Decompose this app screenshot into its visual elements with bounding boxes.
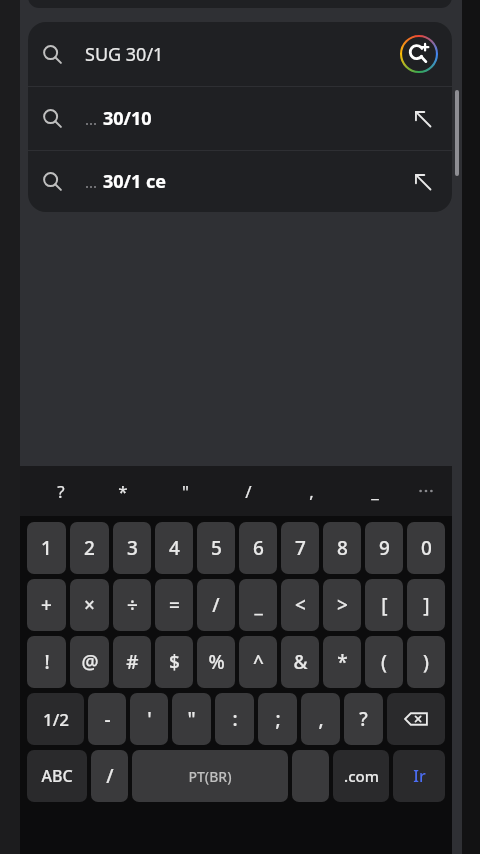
button[interactable]: , (280, 466, 343, 516)
staticText: 5 (211, 535, 222, 561)
button[interactable]: SUG 30/1 (28, 22, 452, 86)
staticText: 4 (169, 535, 180, 561)
button[interactable]: $ (155, 636, 193, 688)
staticText: ÷ (127, 592, 138, 618)
button[interactable]: & (281, 636, 319, 688)
staticText: , (309, 480, 314, 503)
button[interactable]: More options (412, 477, 440, 505)
button[interactable]: 8 (323, 522, 361, 574)
staticText: / (106, 763, 114, 789)
button[interactable]: + (27, 579, 66, 631)
button[interactable]: # (113, 636, 151, 688)
staticText: ... (85, 109, 98, 129)
staticText: _ (371, 480, 379, 503)
button[interactable]: * (92, 466, 154, 516)
button[interactable]: Backspace (387, 693, 445, 745)
button[interactable]: _ (239, 579, 277, 631)
button[interactable]: × (70, 579, 109, 631)
button[interactable]: / (91, 750, 128, 802)
button[interactable]: ] (407, 579, 445, 631)
button[interactable]: Ir (393, 750, 445, 802)
staticText: < (295, 592, 306, 618)
button[interactable]: % (197, 636, 235, 688)
staticText: ^ (253, 649, 264, 675)
button[interactable]: 5 (197, 522, 235, 574)
staticText: @ (81, 649, 99, 675)
button[interactable]: ( (365, 636, 403, 688)
button[interactable]: " (172, 693, 211, 745)
staticText: ? (57, 480, 65, 503)
button[interactable]: 2 (70, 522, 109, 574)
staticText: 8 (337, 535, 348, 561)
button[interactable]: 6 (239, 522, 277, 574)
button[interactable]: 4 (155, 522, 193, 574)
button[interactable]: [ (365, 579, 403, 631)
button[interactable]: Insert suggestion (408, 104, 438, 134)
button[interactable]: > (323, 579, 361, 631)
button[interactable]: .com (333, 750, 389, 802)
button[interactable]: 7 (281, 522, 319, 574)
staticText: ] (423, 592, 430, 618)
button[interactable]: ^ (239, 636, 277, 688)
staticText: / (245, 480, 252, 503)
button[interactable]: ABC (27, 750, 87, 802)
staticText: Ir (413, 765, 426, 787)
button[interactable]: : (215, 693, 254, 745)
button[interactable]: , (301, 693, 340, 745)
button[interactable]: ÷ (113, 579, 151, 631)
staticText: 1 (41, 535, 52, 561)
button[interactable]: < (281, 579, 319, 631)
button[interactable]: ... (28, 151, 452, 212)
staticText: 30/1 ce (103, 169, 167, 194)
staticText: * (337, 649, 348, 675)
staticText: + (41, 592, 52, 618)
button[interactable]: PT(BR) (132, 750, 288, 802)
staticText: ? (359, 706, 368, 732)
button[interactable]: @ (70, 636, 109, 688)
staticText: > (337, 592, 348, 618)
button[interactable]: / (217, 466, 280, 516)
staticText: , (318, 706, 324, 732)
button[interactable]: ; (258, 693, 297, 745)
button[interactable]: ! (27, 636, 66, 688)
staticText: ABC (41, 765, 73, 787)
staticText: " (182, 480, 189, 503)
staticText: $ (169, 649, 180, 675)
button[interactable]: = (155, 579, 193, 631)
staticText: 9 (379, 535, 390, 561)
button[interactable]: Google Lens search (400, 35, 438, 73)
button[interactable]: 9 (365, 522, 403, 574)
staticText: & (293, 649, 308, 675)
staticText: * (118, 480, 128, 503)
button[interactable]: ) (407, 636, 445, 688)
staticText: " (187, 706, 196, 732)
button[interactable]: - (88, 693, 126, 745)
button[interactable]: 1 (27, 522, 66, 574)
button[interactable]: " (154, 466, 217, 516)
button[interactable]: 0 (407, 522, 445, 574)
staticText: _ (254, 592, 263, 618)
button[interactable]: ... (28, 87, 452, 150)
button[interactable]: 3 (113, 522, 151, 574)
staticText: PT(BR) (188, 767, 232, 786)
staticText: ) (423, 649, 429, 675)
staticText: 0 (421, 535, 432, 561)
staticText: SUG 30/1 (85, 42, 164, 67)
button[interactable] (292, 750, 329, 802)
staticText: = (169, 592, 180, 618)
button[interactable]: ? (344, 693, 383, 745)
button[interactable]: / (197, 579, 235, 631)
button[interactable]: * (323, 636, 361, 688)
staticText: % (208, 649, 225, 675)
button[interactable]: _ (343, 466, 406, 516)
button[interactable]: 1/2 (27, 693, 84, 745)
button[interactable]: ' (130, 693, 168, 745)
staticText: 7 (295, 535, 306, 561)
staticText: ( (381, 649, 387, 675)
button[interactable]: Insert suggestion (408, 167, 438, 197)
staticText: 2 (84, 535, 95, 561)
staticText: .com (344, 766, 379, 786)
staticText: 3 (127, 535, 138, 561)
staticText: : (232, 706, 238, 732)
button[interactable]: ? (30, 466, 92, 516)
